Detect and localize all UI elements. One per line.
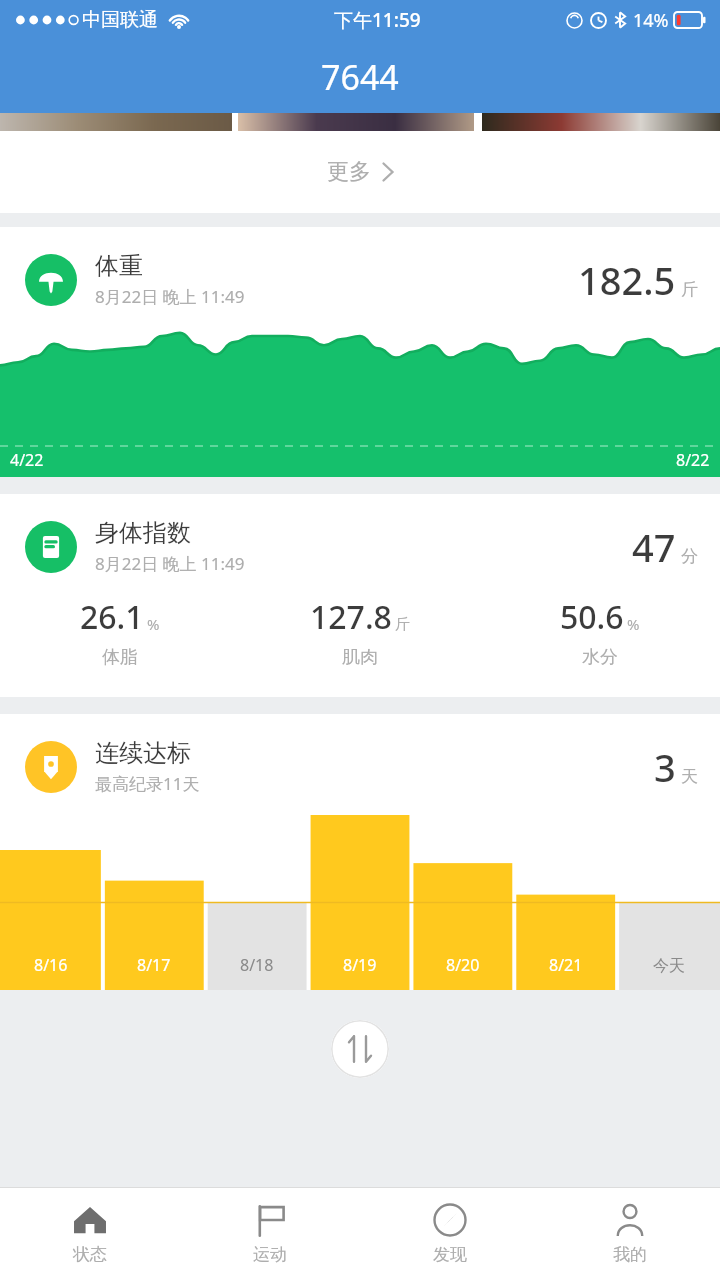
staticText: 4/22 xyxy=(10,449,44,471)
staticText: 8/18 xyxy=(240,954,274,976)
staticText: 最高纪录11天 xyxy=(95,772,200,795)
staticText: 8月22日 晚上 11:49 xyxy=(95,285,245,308)
staticText: 8/21 xyxy=(549,954,583,976)
staticText: 47 xyxy=(632,521,676,573)
staticText: 8/19 xyxy=(343,954,377,976)
staticText: 体脂 xyxy=(102,646,138,669)
staticText: 7644 xyxy=(321,54,399,100)
staticText: 水分 xyxy=(582,646,618,669)
staticText: 状态 xyxy=(73,1244,107,1265)
staticText: 天 xyxy=(681,766,698,787)
staticText: 下午11:59 xyxy=(334,7,421,33)
button[interactable]: 身体指数 xyxy=(0,494,720,697)
staticText: 我的 xyxy=(613,1244,647,1265)
staticText: 运动 xyxy=(253,1244,287,1265)
button[interactable]: 连续达标 xyxy=(0,714,720,990)
staticText: 今天 xyxy=(653,956,685,976)
staticText: 8/22 xyxy=(676,449,710,471)
staticText: 身体指数 xyxy=(95,518,191,548)
staticText: 8/20 xyxy=(446,954,480,976)
staticText: 50.6 xyxy=(560,595,624,639)
button[interactable]: 发现 xyxy=(360,1188,540,1280)
staticText: 肌肉 xyxy=(342,646,378,669)
staticText: % xyxy=(147,614,160,634)
staticText: 8/17 xyxy=(137,954,171,976)
button[interactable]: Refresh xyxy=(331,1020,389,1078)
staticText: 发现 xyxy=(433,1244,467,1265)
staticText: 体重 xyxy=(95,251,143,281)
staticText: % xyxy=(627,614,640,634)
staticText: 14% xyxy=(633,8,669,33)
button[interactable]: 我的 xyxy=(540,1188,720,1280)
button[interactable]: 更多 xyxy=(0,131,720,213)
staticText: 127.8 xyxy=(310,595,392,639)
staticText: 连续达标 xyxy=(95,738,191,768)
staticText: 斤 xyxy=(395,615,410,634)
staticText: 斤 xyxy=(681,279,698,300)
staticText: 8/16 xyxy=(34,954,68,976)
staticText: 182.5 xyxy=(578,254,676,306)
staticText: 8月22日 晚上 11:49 xyxy=(95,552,245,575)
staticText: 中国联通 xyxy=(82,8,158,32)
staticText: 分 xyxy=(681,546,698,567)
button[interactable]: 状态 xyxy=(0,1188,180,1280)
staticText: 3 xyxy=(654,741,676,793)
staticText: 26.1 xyxy=(80,595,144,639)
button[interactable]: 运动 xyxy=(180,1188,360,1280)
staticText: 更多 xyxy=(327,158,371,186)
button[interactable]: 体重 xyxy=(0,227,720,477)
